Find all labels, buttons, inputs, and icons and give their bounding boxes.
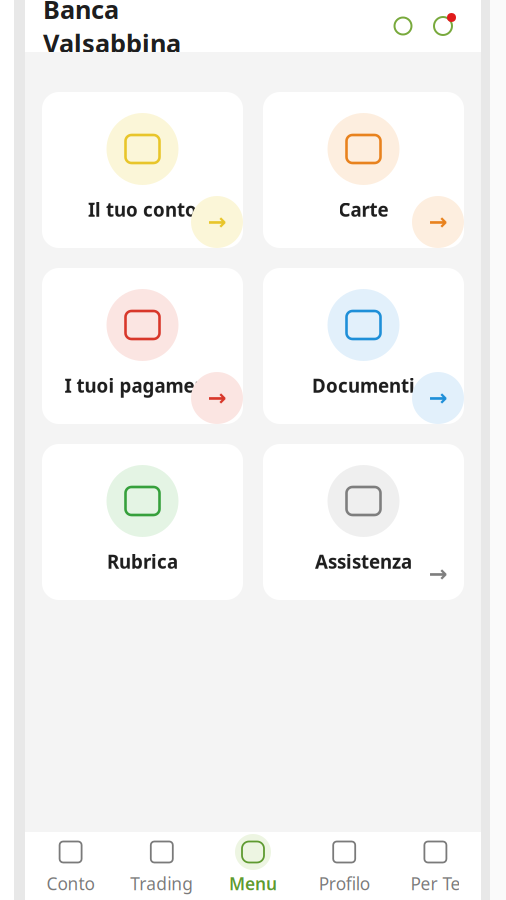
button[interactable]: Per Te <box>390 831 481 900</box>
button[interactable]: Carte <box>263 92 464 248</box>
button[interactable]: Il tuo conto <box>42 92 243 248</box>
staticText: → <box>207 209 226 235</box>
button[interactable]: I tuoi pagamenti <box>42 268 243 424</box>
button[interactable]: Documenti <box>263 268 464 424</box>
staticText: → <box>428 561 447 587</box>
button[interactable]: Rubrica <box>42 444 243 600</box>
staticText: I tuoi pagamenti <box>64 373 220 398</box>
staticText: Banca Valsabbina <box>43 0 181 60</box>
staticText: → <box>428 385 447 411</box>
button[interactable]: Trading <box>116 831 207 900</box>
staticText: → <box>207 385 226 411</box>
button[interactable]: Profilo <box>299 831 390 900</box>
button[interactable]: Assistenza <box>263 444 464 600</box>
staticText: → <box>428 209 447 235</box>
button[interactable]: Cerca <box>383 6 423 46</box>
staticText: Menu <box>229 872 277 895</box>
button[interactable]: Menu <box>207 831 299 900</box>
staticText: Trading <box>130 872 193 895</box>
staticText: Rubrica <box>107 549 178 574</box>
button[interactable]: Conto <box>25 831 116 900</box>
staticText: Conto <box>47 872 95 895</box>
button[interactable]: Notifiche <box>423 6 463 46</box>
staticText: Il tuo conto <box>88 197 197 222</box>
staticText: Carte <box>338 197 388 222</box>
staticText: Per Te <box>410 872 460 895</box>
staticText: Assistenza <box>315 549 412 574</box>
staticText: Profilo <box>319 872 370 895</box>
staticText: Documenti <box>312 373 415 398</box>
